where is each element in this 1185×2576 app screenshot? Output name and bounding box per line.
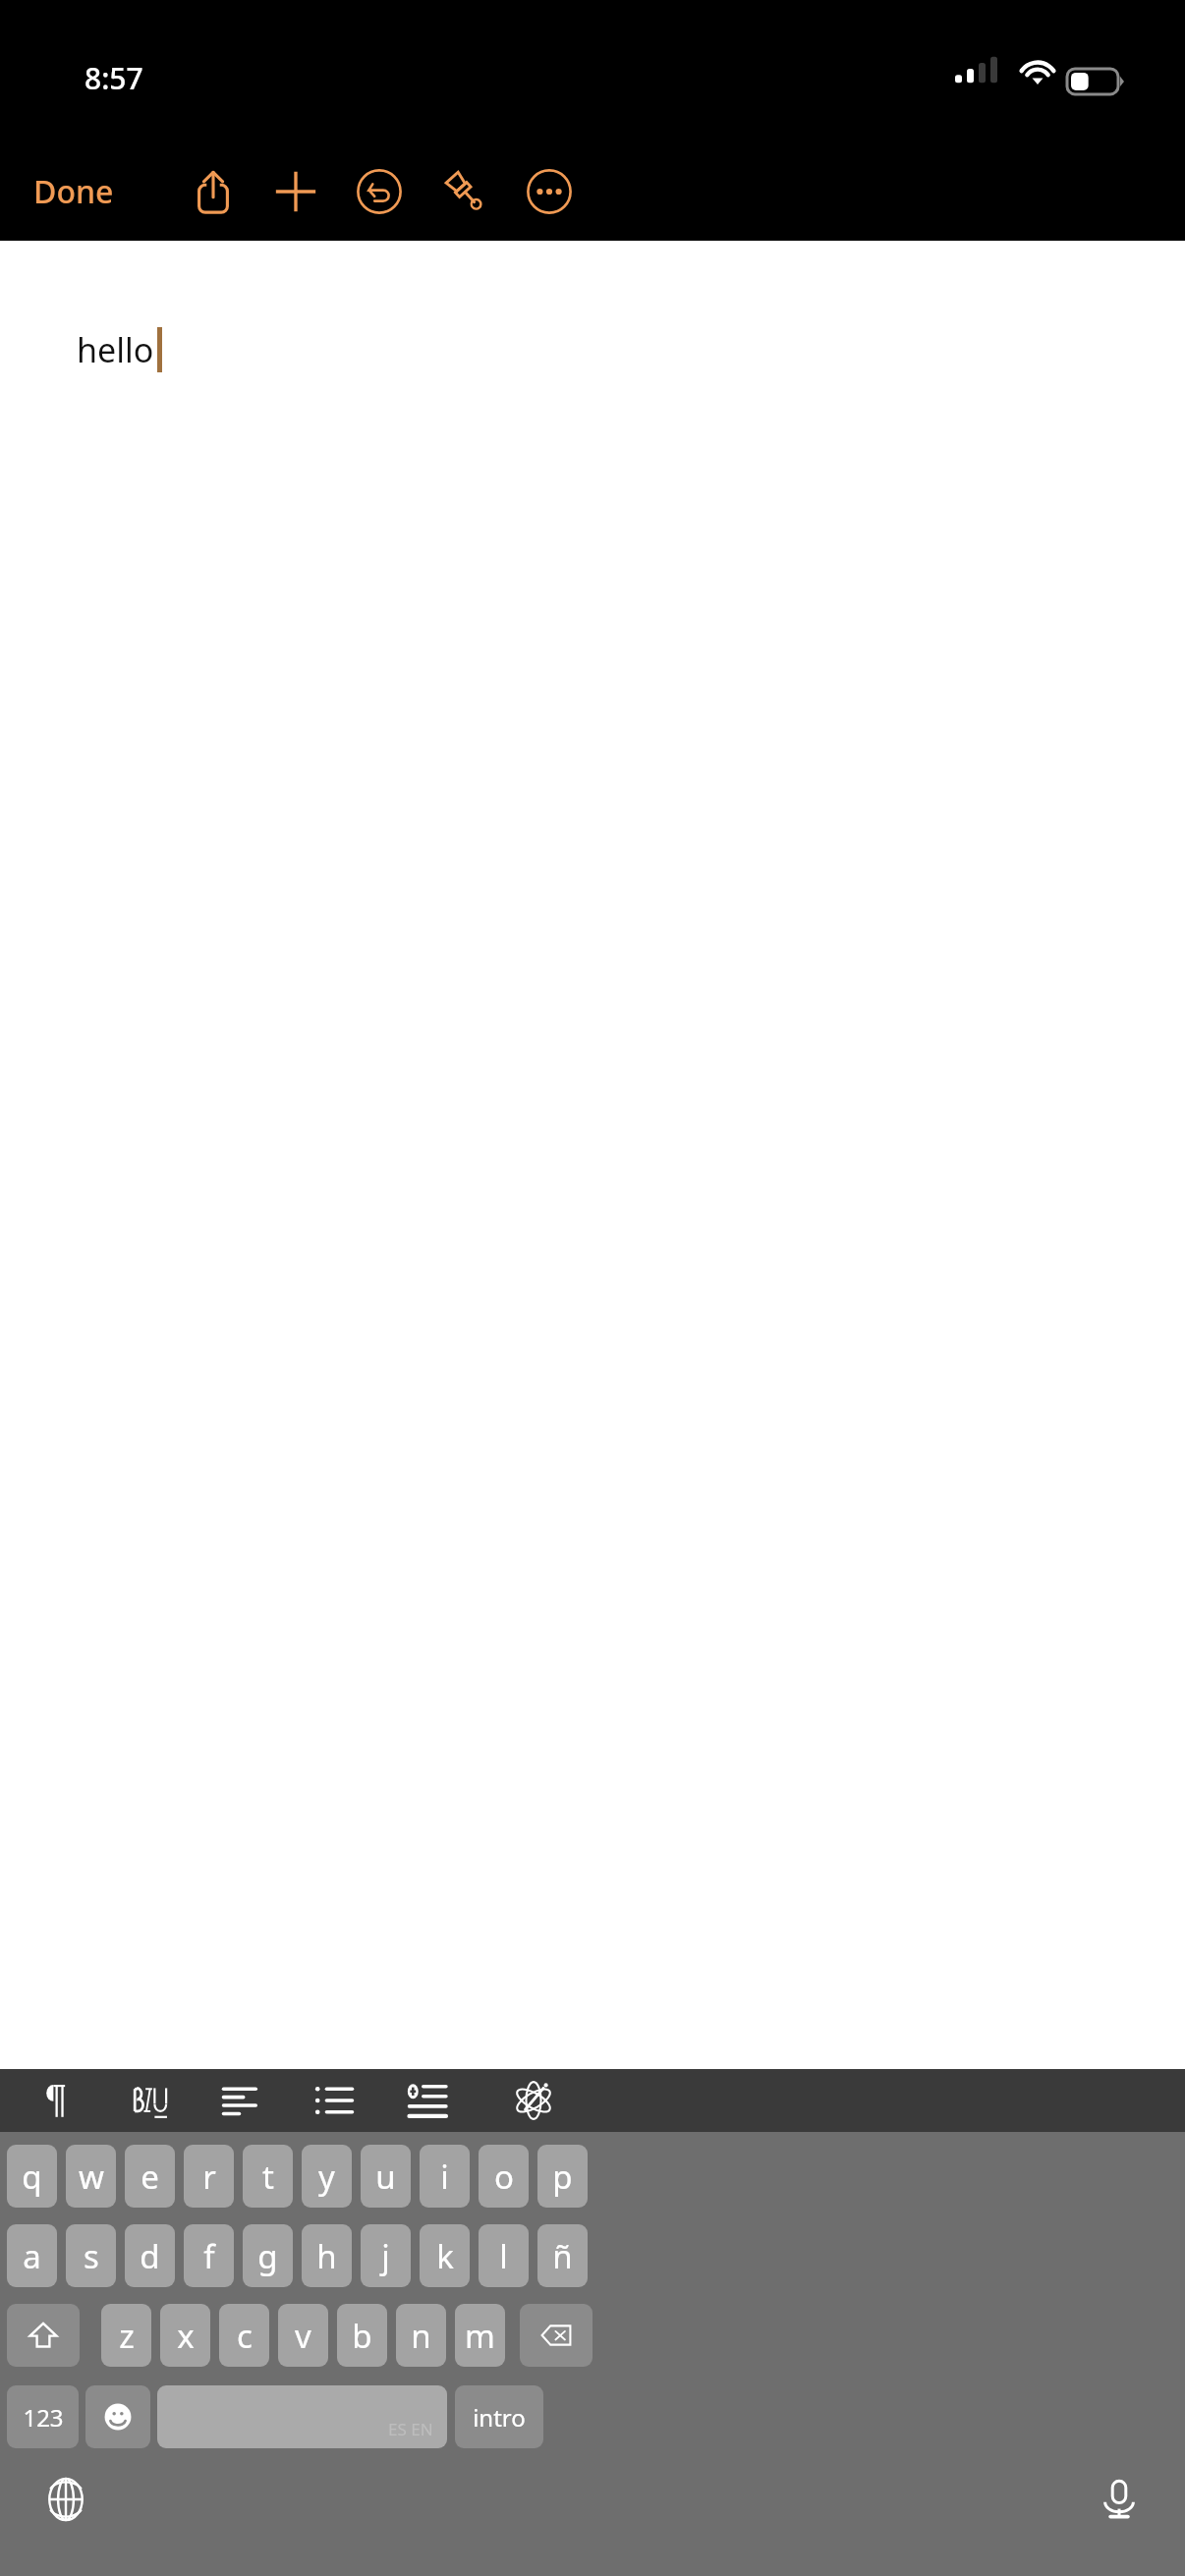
button[interactable]: b — [337, 2304, 387, 2367]
button[interactable]: v — [278, 2304, 328, 2367]
button[interactable]: Share — [183, 161, 244, 222]
button[interactable]: Change keyboard — [37, 2471, 94, 2528]
staticText: c — [237, 2314, 253, 2358]
button[interactable]: d — [125, 2224, 175, 2287]
button[interactable]: f — [184, 2224, 234, 2287]
button[interactable]: Text alignment — [210, 2069, 273, 2132]
staticText: 8:57 — [85, 58, 143, 98]
staticText: d — [140, 2234, 160, 2278]
button[interactable]: p — [537, 2145, 588, 2208]
button[interactable]: Undo — [349, 161, 410, 222]
button[interactable]: q — [7, 2145, 57, 2208]
button[interactable]: x — [160, 2304, 210, 2367]
button[interactable]: Markup — [434, 161, 495, 222]
button[interactable]: c — [219, 2304, 269, 2367]
button[interactable]: k — [420, 2224, 470, 2287]
staticText: o — [494, 2155, 514, 2199]
staticText: ñ — [552, 2234, 573, 2278]
staticText: 123 — [23, 2401, 64, 2434]
button[interactable]: ñ — [537, 2224, 588, 2287]
button[interactable]: i — [420, 2145, 470, 2208]
button[interactable]: r — [184, 2145, 234, 2208]
staticText: a — [23, 2234, 41, 2278]
button[interactable]: g — [243, 2224, 293, 2287]
staticText: y — [318, 2155, 335, 2199]
button[interactable]: Backspace — [520, 2304, 592, 2367]
staticText: s — [84, 2234, 99, 2278]
button[interactable]: z — [101, 2304, 151, 2367]
button[interactable]: intro — [455, 2385, 543, 2448]
button[interactable]: Shift — [7, 2304, 80, 2367]
button[interactable]: u — [361, 2145, 411, 2208]
button[interactable]: n — [396, 2304, 446, 2367]
button[interactable]: w — [66, 2145, 116, 2208]
staticText: x — [177, 2314, 195, 2358]
staticText: n — [411, 2314, 431, 2358]
button[interactable]: Bulleted list — [303, 2069, 366, 2132]
button[interactable]: 123 — [7, 2385, 79, 2448]
button[interactable]: Emoji — [85, 2385, 150, 2448]
staticText: w — [79, 2155, 104, 2199]
staticText: h — [316, 2234, 337, 2278]
staticText: m — [465, 2314, 495, 2358]
staticText: e — [141, 2155, 159, 2199]
staticText: v — [295, 2314, 311, 2358]
staticText: j — [381, 2234, 390, 2278]
button[interactable]: Space — [157, 2385, 447, 2448]
staticText: q — [22, 2155, 42, 2199]
staticText: p — [552, 2155, 573, 2199]
button[interactable]: t — [243, 2145, 293, 2208]
staticText: ES EN — [388, 2418, 433, 2440]
button[interactable]: s — [66, 2224, 116, 2287]
staticText: f — [203, 2234, 215, 2278]
button[interactable]: Markup — [502, 2069, 565, 2132]
button[interactable]: Add — [265, 161, 326, 222]
button[interactable]: e — [125, 2145, 175, 2208]
button[interactable]: o — [479, 2145, 529, 2208]
staticText: t — [262, 2155, 274, 2199]
staticText: r — [202, 2155, 216, 2199]
staticText: Done — [33, 170, 114, 213]
staticText: hello — [77, 327, 154, 372]
staticText: z — [119, 2314, 135, 2358]
button[interactable]: Indent list — [396, 2069, 459, 2132]
button[interactable]: Bold Italic Underline — [120, 2069, 183, 2132]
staticText: i — [440, 2155, 449, 2199]
button[interactable]: Paragraph style — [27, 2069, 89, 2132]
button[interactable]: l — [479, 2224, 529, 2287]
staticText: l — [499, 2234, 508, 2278]
button[interactable]: a — [7, 2224, 57, 2287]
staticText: g — [257, 2234, 278, 2278]
staticText: u — [375, 2155, 396, 2199]
button[interactable]: m — [455, 2304, 505, 2367]
staticText: b — [352, 2314, 372, 2358]
button[interactable]: Dictate — [1091, 2471, 1148, 2528]
staticText: intro — [473, 2401, 526, 2434]
button[interactable]: h — [302, 2224, 352, 2287]
button[interactable]: Done — [18, 162, 130, 221]
button[interactable]: y — [302, 2145, 352, 2208]
staticText: k — [436, 2234, 454, 2278]
button[interactable]: j — [361, 2224, 411, 2287]
button[interactable]: More — [519, 161, 580, 222]
